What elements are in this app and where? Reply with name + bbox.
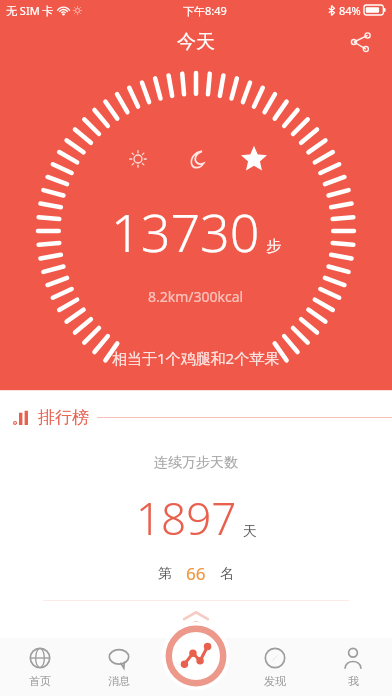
- staticText: 无 SIM 卡: [6, 3, 54, 18]
- staticText: 今天: [177, 30, 215, 54]
- button[interactable]: Start activity: [162, 622, 230, 690]
- button[interactable]: Day steps: [124, 145, 152, 173]
- staticText: 步: [266, 237, 281, 256]
- staticText: 8.2km/300kcal: [148, 287, 244, 306]
- button[interactable]: 我: [314, 638, 392, 696]
- button[interactable]: Night steps: [182, 145, 210, 173]
- staticText: 相当于1个鸡腿和2个苹果: [112, 348, 280, 368]
- staticText: 连续万步天数: [154, 454, 238, 472]
- button[interactable]: Share: [344, 25, 378, 59]
- button[interactable]: 发现: [236, 638, 314, 696]
- staticText: 我: [348, 674, 359, 688]
- staticText: 第: [158, 565, 172, 583]
- staticText: 排行榜: [38, 407, 89, 428]
- staticText: 发现: [264, 674, 286, 688]
- staticText: 66: [186, 562, 206, 585]
- staticText: 天: [243, 523, 257, 541]
- button[interactable]: 消息: [79, 638, 158, 696]
- staticText: 84%: [339, 3, 361, 18]
- button[interactable]: 首页: [0, 638, 79, 696]
- staticText: 消息: [108, 674, 130, 688]
- button[interactable]: 排行榜: [0, 396, 392, 438]
- staticText: 1897: [136, 488, 237, 548]
- staticText: 名: [220, 565, 234, 583]
- button[interactable]: Goal reached: [240, 145, 268, 173]
- staticText: 首页: [29, 674, 51, 688]
- staticText: 13730: [111, 196, 260, 267]
- staticText: 下午8:49: [183, 3, 227, 18]
